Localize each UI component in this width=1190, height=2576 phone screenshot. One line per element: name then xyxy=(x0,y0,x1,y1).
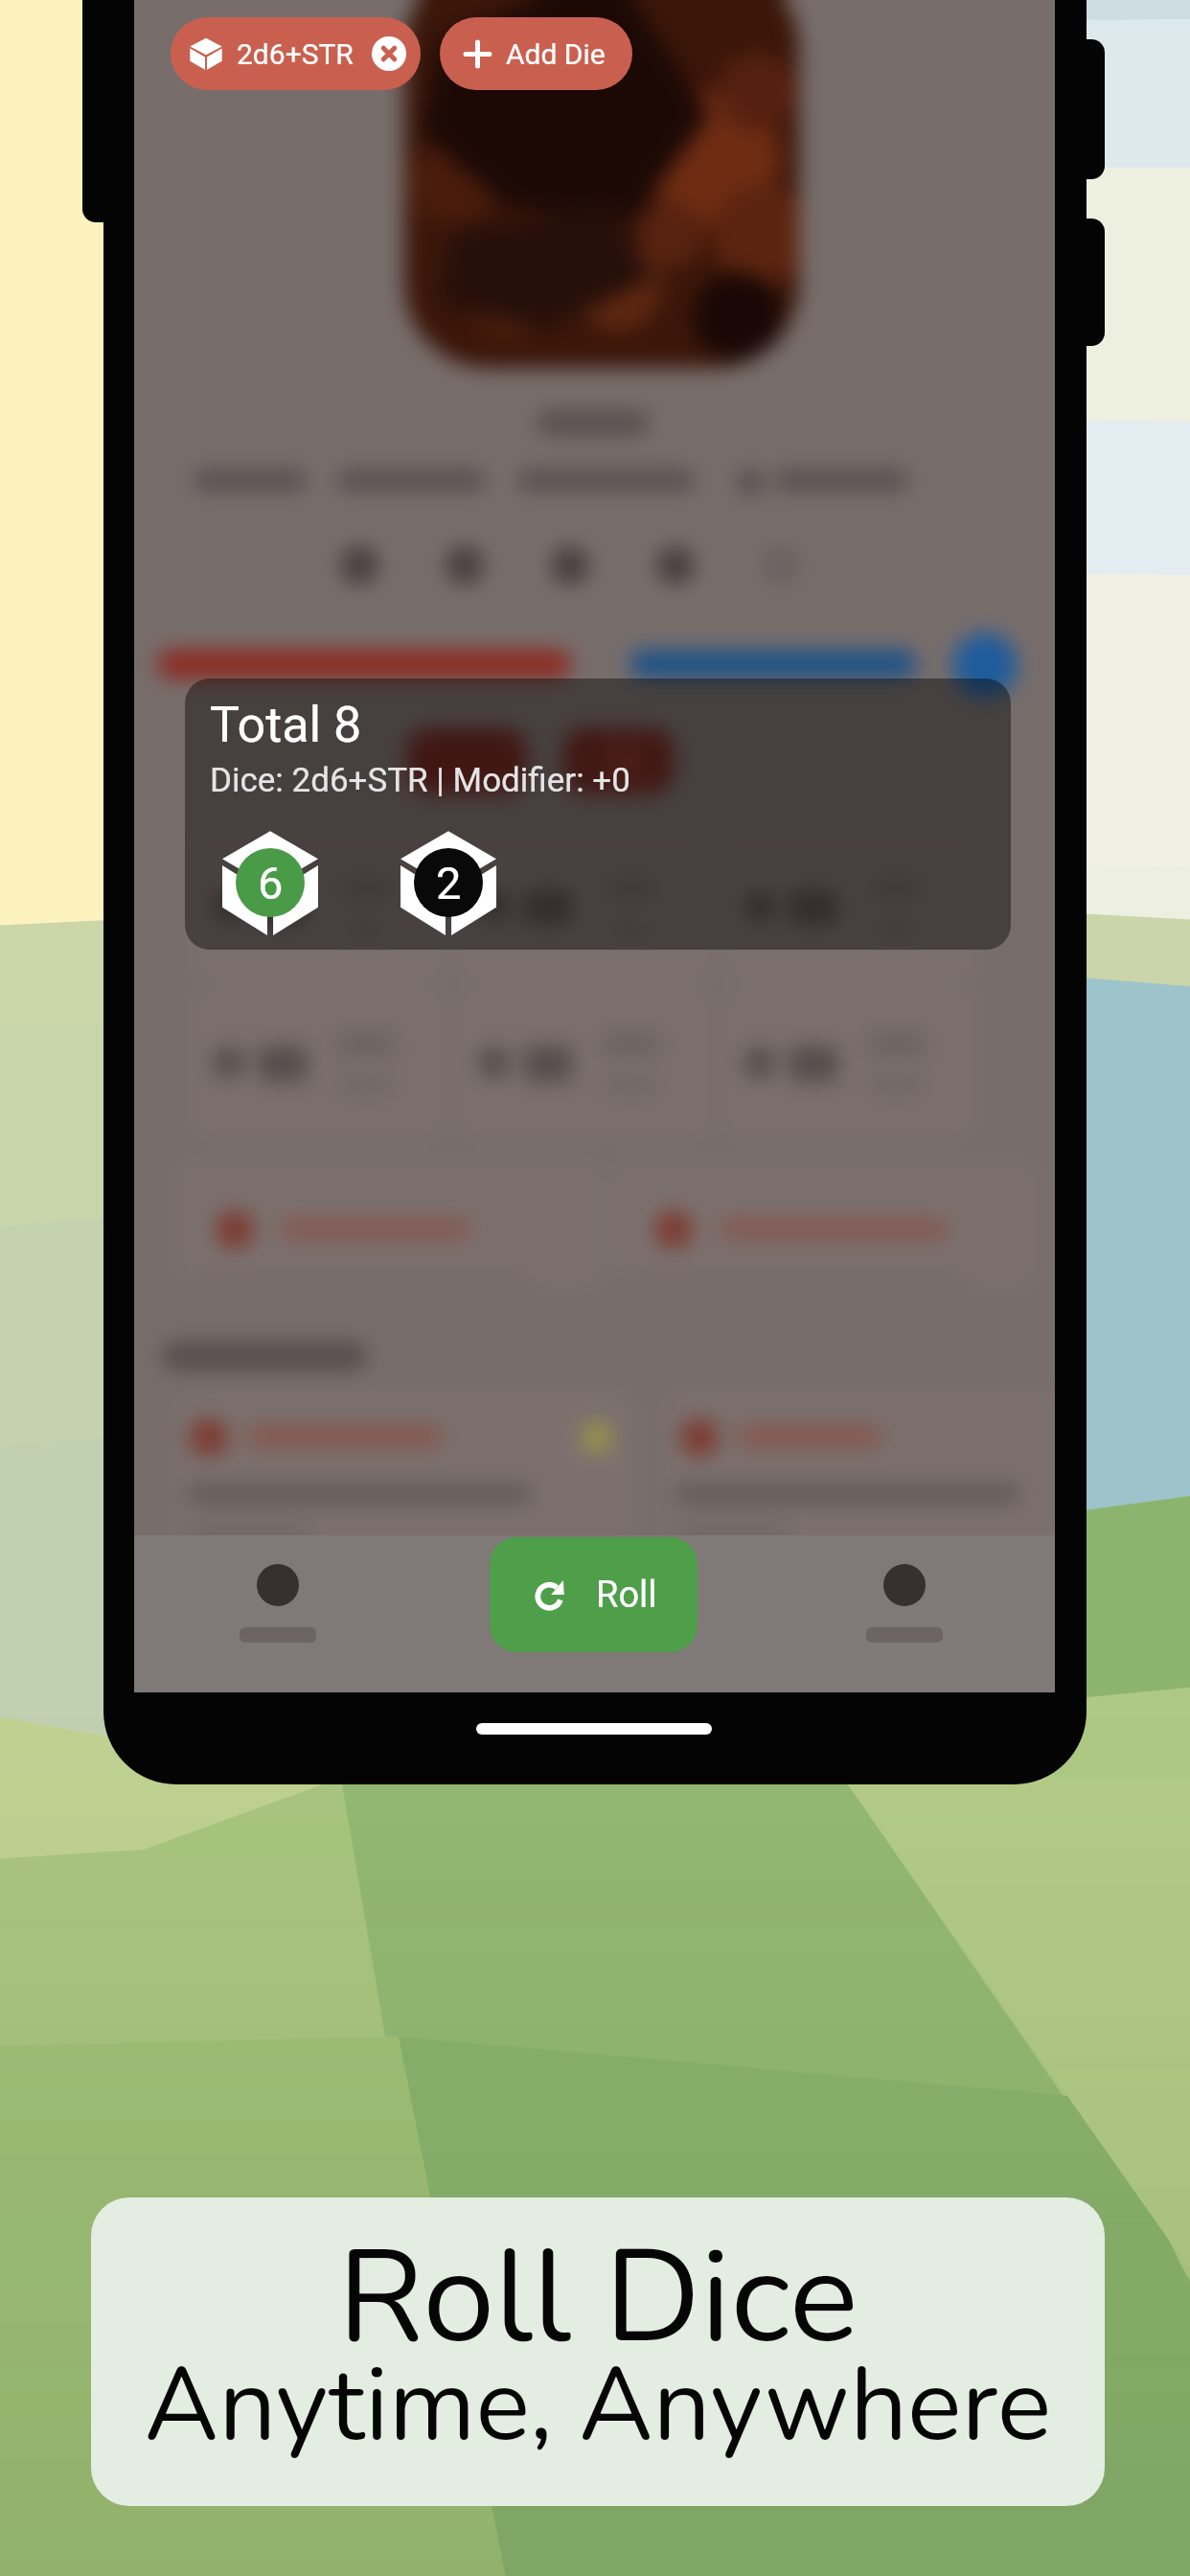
staticText: Roll Dice xyxy=(91,2210,1105,2386)
staticText: Add Die xyxy=(506,37,606,71)
button[interactable]: Remove die xyxy=(372,36,406,71)
staticText: Anytime, Anywhere xyxy=(91,2336,1105,2475)
button[interactable]: 2d6+STR xyxy=(171,17,421,90)
staticText: Roll xyxy=(596,1574,657,1617)
button[interactable]: Sheet xyxy=(201,1564,355,1643)
staticText: Total 8 xyxy=(210,696,362,754)
button[interactable]: Spells xyxy=(828,1564,981,1643)
staticText: Dice: 2d6+STR | Modifier: +0 xyxy=(210,761,630,800)
staticText: 6 xyxy=(258,857,284,909)
button[interactable]: Add Die xyxy=(440,17,632,90)
staticText: 2 xyxy=(436,857,462,909)
button[interactable]: Roll xyxy=(490,1537,698,1652)
staticText: 2d6+STR xyxy=(237,37,354,71)
